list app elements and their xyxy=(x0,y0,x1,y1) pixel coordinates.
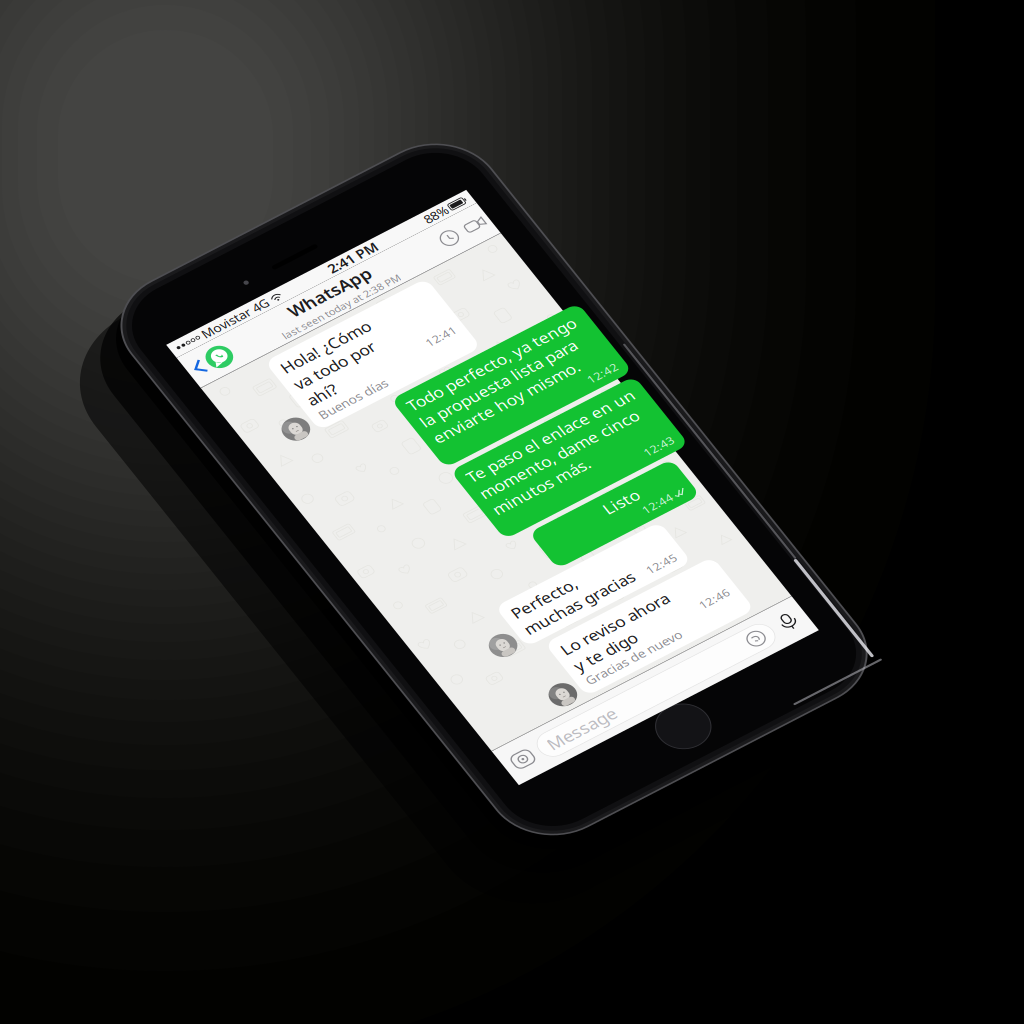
staticText: 12:45 xyxy=(265,481,301,499)
staticText: Listo xyxy=(270,388,312,413)
staticText: 12:43 xyxy=(346,352,382,370)
staticText: Todo perfecto, ya tengo la propuesta lis… xyxy=(170,166,378,240)
staticText: 12:44 xyxy=(304,414,340,431)
button[interactable]: Record voice message xyxy=(341,606,367,644)
staticText: Gracias de nuevo xyxy=(133,567,251,586)
staticText: Te paso el enlace en un momento, dame ci… xyxy=(172,277,379,351)
staticText: Lo reviso ahora y te digo xyxy=(133,517,265,567)
staticText: 12:46 xyxy=(287,549,323,567)
button[interactable]: Message xyxy=(43,608,334,641)
staticText: 12:42 xyxy=(348,241,384,259)
staticText: Perfecto, muchas gracias xyxy=(115,449,250,499)
